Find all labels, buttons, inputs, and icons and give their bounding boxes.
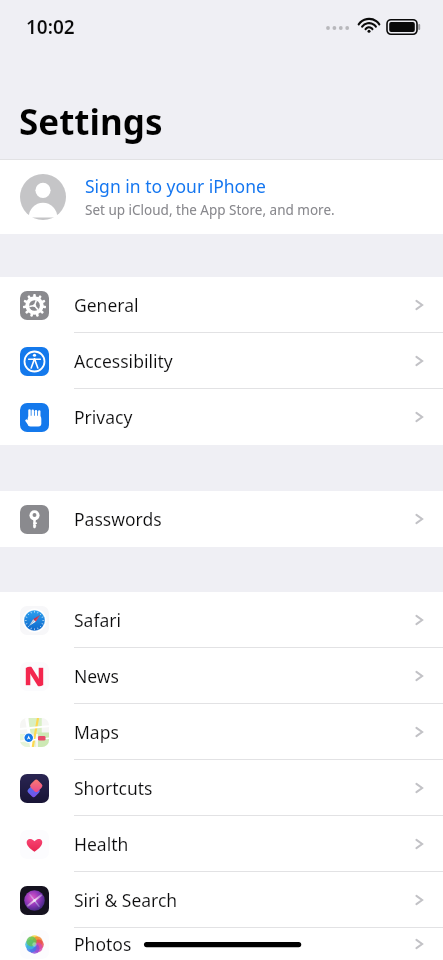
staticText: Health [74,832,129,856]
button[interactable]: Maps [0,704,443,760]
staticText: Accessibility [74,349,173,373]
staticText: News [74,664,119,688]
staticText: Maps [74,720,119,744]
staticText: Settings [19,98,163,146]
button[interactable]: Health [0,816,443,872]
button[interactable]: Privacy [0,389,443,445]
staticText: Passwords [74,507,162,531]
button[interactable]: Photos [0,928,443,960]
button[interactable]: General [0,277,443,333]
staticText: Privacy [74,405,133,429]
staticText: Siri & Search [74,888,178,912]
staticText: Shortcuts [74,776,153,800]
staticText: 10:02 [26,14,75,40]
button[interactable]: Shortcuts [0,760,443,816]
button[interactable]: Passwords [0,491,443,547]
staticText: Sign in to your iPhone [85,174,266,198]
button[interactable]: Safari [0,592,443,648]
staticText: Photos [74,932,132,956]
staticText: Set up iCloud, the App Store, and more. [85,201,335,219]
button[interactable]: News [0,648,443,704]
button[interactable]: Sign in to your iPhone [0,160,443,234]
staticText: General [74,293,139,317]
staticText: Safari [74,608,122,632]
button[interactable]: Accessibility [0,333,443,389]
button[interactable]: Siri & Search [0,872,443,928]
